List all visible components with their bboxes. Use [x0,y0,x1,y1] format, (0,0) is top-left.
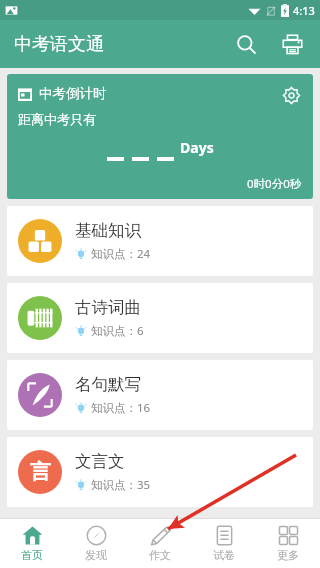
staticText: 发现 [85,548,107,562]
button[interactable]: 言 [7,437,313,507]
staticText: 试卷 [213,548,235,562]
button[interactable]: 作文 [128,519,192,568]
button[interactable]: 中考倒计时 [7,74,313,199]
staticText: Days [180,138,214,157]
staticText: 知识点：16 [91,400,151,416]
button[interactable]: 试卷 [192,519,256,568]
button[interactable]: Settings [277,81,305,109]
staticText: 知识点：6 [91,323,144,339]
staticText: 首页 [21,548,43,562]
button[interactable]: 首页 [0,519,64,568]
button[interactable]: 发现 [64,519,128,568]
staticText: 言 [30,459,51,485]
staticText: 基础知识 [75,220,141,241]
staticText: 作文 [149,548,171,562]
staticText: 中考语文通 [14,33,104,56]
staticText: 知识点：24 [91,246,151,262]
staticText: 文言文 [75,451,125,472]
staticText: 4:13 [293,3,315,18]
button[interactable]: 更多 [256,519,320,568]
button[interactable]: 基础知识 [7,206,313,276]
staticText: 0时0分0秒 [247,176,302,192]
staticText: 古诗词曲 [75,297,141,318]
button[interactable]: 古诗词曲 [7,283,313,353]
button[interactable]: 名句默写 [7,360,313,430]
staticText: 知识点：35 [91,477,151,493]
staticText: 距离中考只有 [18,111,96,127]
staticText: 名句默写 [75,374,141,395]
button[interactable]: Print [270,22,314,66]
staticText: 中考倒计时 [39,85,107,102]
button[interactable]: Search [224,22,268,66]
staticText: 更多 [277,548,299,562]
